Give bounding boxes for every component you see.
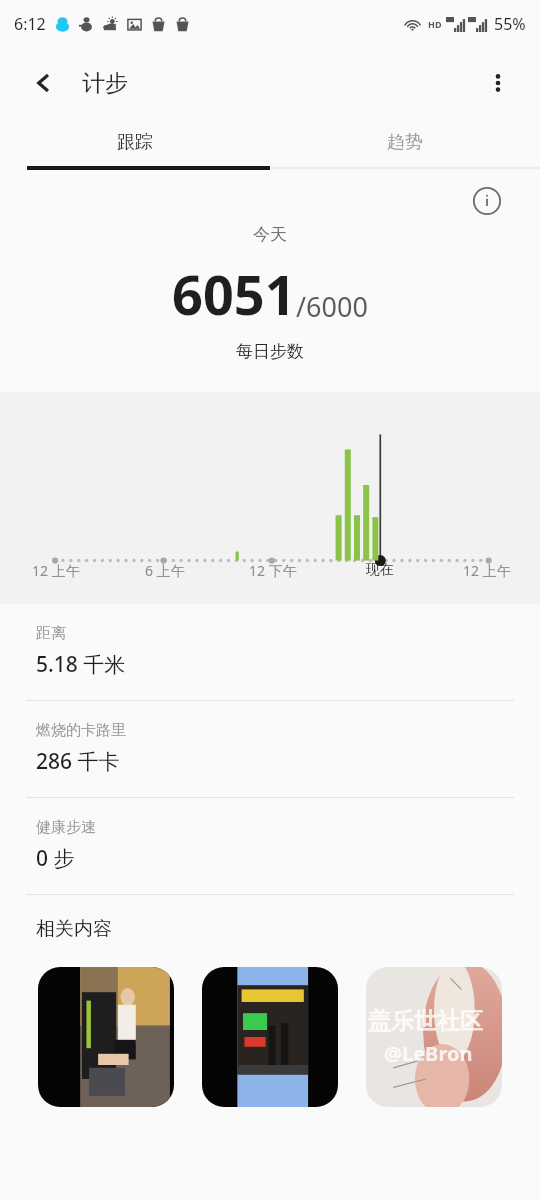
staticText: 跟踪 [117, 131, 153, 154]
staticText: 今天 [253, 224, 287, 245]
staticText: 相关内容 [36, 917, 112, 941]
button[interactable]: Back [22, 61, 66, 105]
staticText: 5.18 千米 [36, 650, 126, 679]
button[interactable] [202, 967, 338, 1107]
button[interactable]: 距离 [0, 604, 540, 700]
staticText: 55% [494, 13, 526, 35]
button[interactable]: 趋势 [270, 118, 540, 166]
button[interactable]: 健康步速 [0, 798, 540, 894]
staticText: HD [428, 18, 442, 30]
staticText: 每日步数 [236, 341, 304, 362]
button[interactable]: 燃烧的卡路里 [0, 701, 540, 797]
staticText: 现在 [366, 561, 394, 579]
button[interactable]: 12 上午 [0, 392, 540, 604]
staticText: 0 步 [36, 844, 75, 873]
button[interactable]: 跟踪 [0, 118, 270, 166]
staticText: 12 上午 [463, 561, 511, 580]
staticText: 12 下午 [249, 561, 297, 580]
staticText: 距离 [36, 624, 66, 643]
staticText: 趋势 [387, 131, 423, 154]
button[interactable]: 盖乐世社区 [366, 967, 502, 1107]
staticText: @LeBron [384, 1040, 473, 1067]
staticText: 燃烧的卡路里 [36, 721, 126, 740]
staticText: 盖乐世社区 [368, 1007, 483, 1036]
staticText: 6 上午 [145, 561, 185, 580]
button[interactable]: More options [476, 61, 520, 105]
staticText: 6051 [172, 257, 296, 331]
staticText: 12 上午 [32, 561, 80, 580]
staticText: 6:12 [14, 13, 46, 35]
button[interactable] [38, 967, 174, 1107]
staticText: 计步 [82, 69, 128, 98]
button[interactable]: Information [470, 184, 504, 218]
staticText: 健康步速 [36, 818, 96, 837]
staticText: /6000 [296, 288, 368, 325]
staticText: 286 千卡 [36, 747, 120, 776]
